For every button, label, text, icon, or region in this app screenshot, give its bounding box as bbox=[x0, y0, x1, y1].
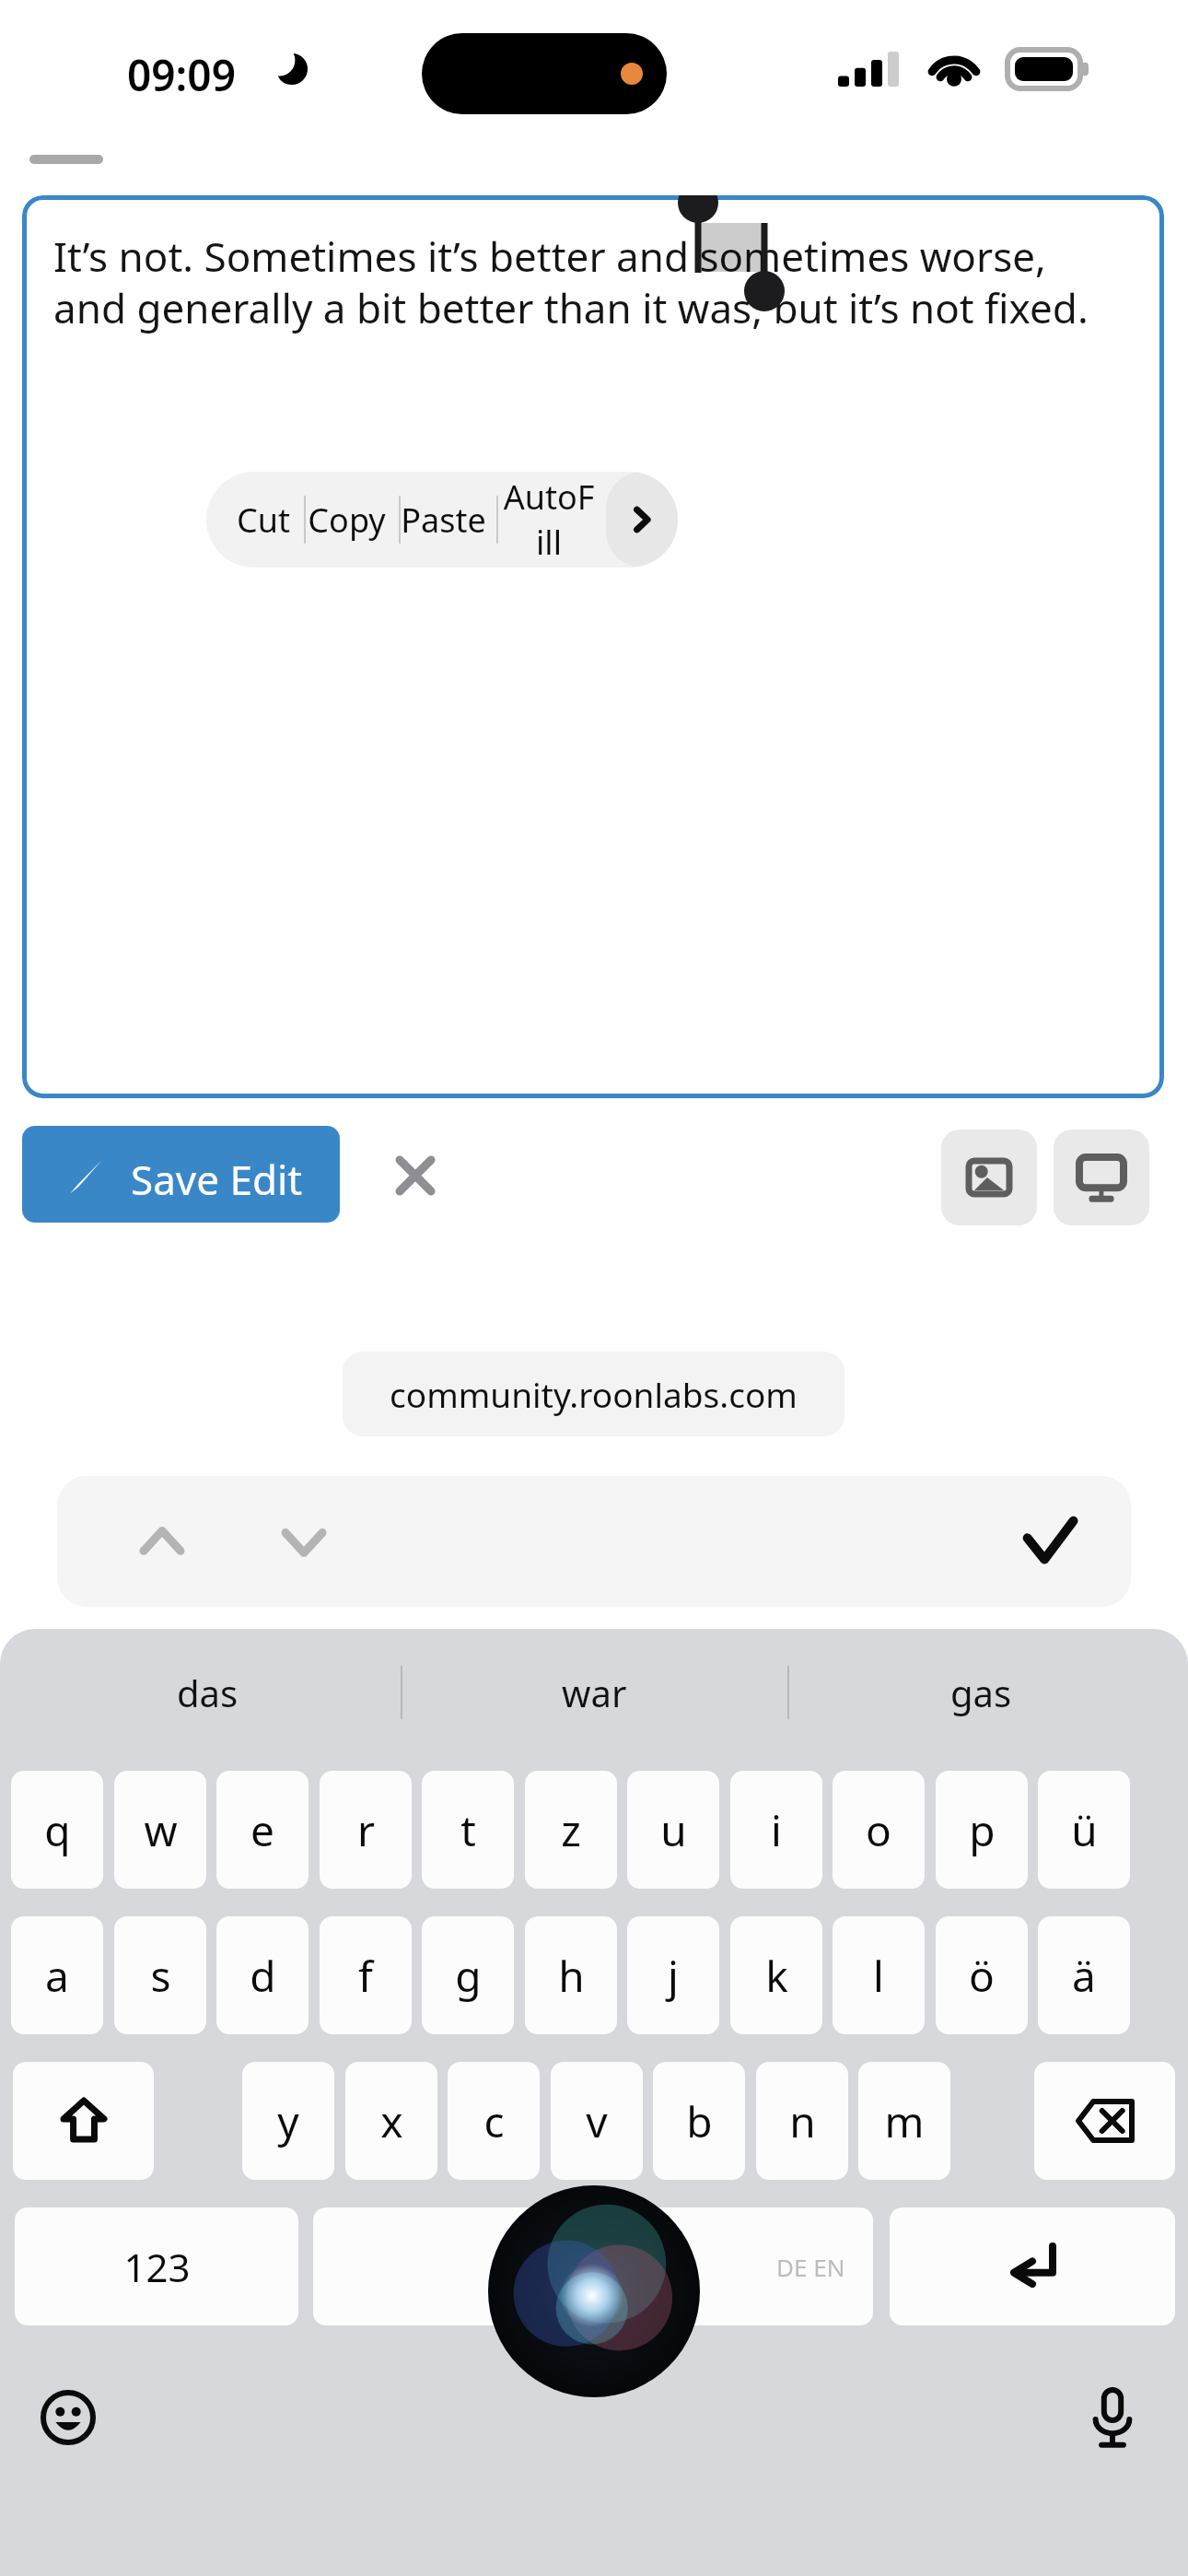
button[interactable]: AutoFill bbox=[503, 472, 595, 568]
button[interactable]: community.roonlabs.com bbox=[343, 1352, 844, 1436]
button[interactable]: das bbox=[60, 1629, 355, 1756]
button[interactable]: Copy bbox=[300, 472, 392, 568]
staticText: k bbox=[765, 1947, 788, 2005]
button[interactable]: Insert image bbox=[941, 1130, 1037, 1225]
button[interactable]: j bbox=[627, 1916, 719, 2034]
button[interactable]: Cut bbox=[217, 472, 309, 568]
staticText: Paste bbox=[401, 498, 486, 543]
button[interactable]: s bbox=[114, 1916, 206, 2034]
staticText: i bbox=[771, 1801, 782, 1859]
button[interactable]: e bbox=[216, 1771, 309, 1889]
button[interactable]: Next field bbox=[262, 1500, 346, 1585]
button[interactable]: 123 bbox=[15, 2207, 298, 2325]
button[interactable]: Return bbox=[890, 2207, 1175, 2325]
staticText: f bbox=[358, 1947, 373, 2005]
button[interactable]: k bbox=[730, 1916, 822, 2034]
staticText: d bbox=[250, 1947, 276, 2005]
button[interactable]: w bbox=[114, 1771, 206, 1889]
staticText: ä bbox=[1072, 1947, 1096, 2005]
button[interactable]: Cancel edit bbox=[382, 1142, 448, 1209]
button[interactable]: h bbox=[525, 1916, 617, 2034]
staticText: y bbox=[277, 2092, 299, 2150]
button[interactable]: b bbox=[653, 2062, 745, 2180]
staticText: r bbox=[357, 1801, 375, 1859]
button[interactable]: Shift bbox=[13, 2062, 154, 2180]
staticText: m bbox=[884, 2092, 925, 2150]
button[interactable]: v bbox=[551, 2062, 643, 2180]
staticText: ö bbox=[969, 1947, 995, 2005]
staticText: Cut bbox=[237, 498, 290, 543]
staticText: community.roonlabs.com bbox=[390, 1371, 798, 1417]
staticText: war bbox=[562, 1668, 627, 1717]
button[interactable]: ö bbox=[936, 1916, 1028, 2034]
button[interactable]: a bbox=[11, 1916, 103, 2034]
button[interactable]: It’s not. Sometimes it’s better and some… bbox=[22, 195, 1164, 1098]
button[interactable]: More options bbox=[606, 472, 678, 568]
staticText: p bbox=[969, 1801, 996, 1859]
button[interactable]: Done bbox=[1006, 1498, 1094, 1587]
staticText: o bbox=[866, 1801, 891, 1859]
staticText: Save Edit bbox=[131, 1152, 303, 1207]
button[interactable]: Paste bbox=[397, 472, 489, 568]
button[interactable]: Emoji bbox=[24, 2373, 112, 2462]
button[interactable]: d bbox=[216, 1916, 309, 2034]
button[interactable]: n bbox=[756, 2062, 848, 2180]
button[interactable]: ü bbox=[1038, 1771, 1130, 1889]
staticText: v bbox=[586, 2092, 608, 2150]
staticText: It’s not. Sometimes it’s better and some… bbox=[53, 228, 1145, 335]
staticText: h bbox=[558, 1947, 585, 2005]
staticText: b bbox=[686, 2092, 713, 2150]
staticText: q bbox=[44, 1801, 71, 1859]
button[interactable]: Dictate bbox=[1068, 2373, 1157, 2462]
button[interactable]: o bbox=[833, 1771, 925, 1889]
button[interactable]: Preview bbox=[1054, 1130, 1149, 1225]
button[interactable]: u bbox=[627, 1771, 719, 1889]
staticText: a bbox=[45, 1947, 69, 2005]
button[interactable]: l bbox=[833, 1916, 925, 2034]
staticText: s bbox=[150, 1947, 171, 2005]
button[interactable]: z bbox=[525, 1771, 617, 1889]
staticText: l bbox=[873, 1947, 884, 2005]
staticText: AutoFill bbox=[503, 474, 595, 565]
staticText: das bbox=[177, 1668, 239, 1717]
staticText: gas bbox=[950, 1668, 1012, 1717]
button[interactable]: Previous field bbox=[120, 1500, 204, 1585]
staticText: z bbox=[561, 1801, 581, 1859]
button[interactable]: r bbox=[320, 1771, 412, 1889]
button[interactable]: i bbox=[730, 1771, 822, 1889]
button[interactable]: t bbox=[422, 1771, 514, 1889]
button[interactable]: m bbox=[858, 2062, 950, 2180]
staticText: 123 bbox=[123, 2241, 191, 2293]
staticText: 09:09 bbox=[127, 46, 236, 104]
button[interactable]: Space bbox=[313, 2207, 873, 2325]
button[interactable]: f bbox=[320, 1916, 412, 2034]
button[interactable]: x bbox=[345, 2062, 437, 2180]
staticText: j bbox=[668, 1947, 679, 2005]
button[interactable]: g bbox=[422, 1916, 514, 2034]
staticText: e bbox=[250, 1801, 274, 1859]
staticText: c bbox=[483, 2092, 505, 2150]
staticText: w bbox=[144, 1801, 178, 1859]
button[interactable]: gas bbox=[833, 1629, 1128, 1756]
button[interactable]: ä bbox=[1038, 1916, 1130, 2034]
button[interactable]: q bbox=[11, 1771, 103, 1889]
staticText: x bbox=[380, 2092, 403, 2150]
staticText: DE EN bbox=[776, 2251, 845, 2283]
button[interactable]: p bbox=[936, 1771, 1028, 1889]
staticText: Copy bbox=[308, 498, 386, 543]
button[interactable]: y bbox=[242, 2062, 334, 2180]
button[interactable]: Save Edit bbox=[22, 1126, 340, 1223]
button[interactable]: war bbox=[447, 1629, 741, 1756]
staticText: t bbox=[460, 1801, 476, 1859]
staticText: n bbox=[789, 2092, 816, 2150]
button[interactable]: Backspace bbox=[1034, 2062, 1175, 2180]
staticText: u bbox=[660, 1801, 687, 1859]
button[interactable]: c bbox=[448, 2062, 540, 2180]
staticText: g bbox=[455, 1947, 482, 2005]
staticText: ü bbox=[1071, 1801, 1098, 1859]
